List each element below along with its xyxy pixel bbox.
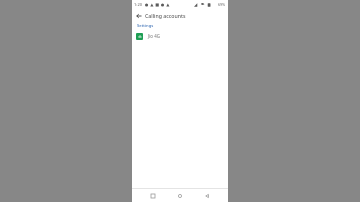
button[interactable]: Jio 4G xyxy=(132,30,228,42)
button[interactable]: Recent apps xyxy=(147,190,159,202)
staticText: Calling accounts xyxy=(145,12,186,19)
button[interactable]: Back xyxy=(132,9,145,22)
staticText: 69% xyxy=(218,2,226,7)
button[interactable]: Back xyxy=(201,190,213,202)
staticText: Jio 4G xyxy=(148,33,160,39)
staticText: Settings xyxy=(137,23,154,29)
button[interactable]: Home xyxy=(174,190,186,202)
staticText: 1:20 xyxy=(134,2,142,7)
